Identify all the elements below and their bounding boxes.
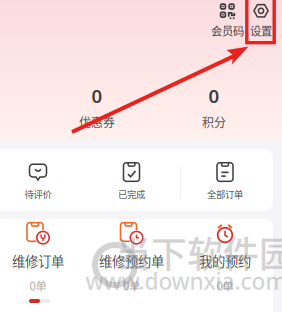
staticText: 0 bbox=[208, 83, 219, 108]
staticText: 维修预约单 bbox=[99, 251, 164, 270]
button[interactable]: 我的预约 bbox=[181, 229, 269, 287]
button[interactable]: 全部订单 bbox=[181, 160, 269, 204]
button[interactable]: 0 bbox=[62, 91, 132, 123]
staticText: 0单 bbox=[123, 277, 140, 294]
staticText: 全部订单 bbox=[207, 187, 243, 201]
staticText: 维修订单 bbox=[12, 251, 64, 270]
button[interactable]: 维修预约单 bbox=[87, 229, 175, 287]
staticText: 会员码 bbox=[211, 22, 244, 39]
staticText: 积分 bbox=[202, 113, 226, 131]
staticText: www.downxia.com bbox=[85, 266, 282, 296]
button[interactable]: 设置 bbox=[240, 6, 282, 36]
staticText: 我的预约 bbox=[199, 251, 251, 270]
staticText: 当下软件园 bbox=[115, 226, 282, 278]
staticText: 待评价 bbox=[24, 187, 51, 201]
staticText: 优惠券 bbox=[79, 113, 115, 131]
staticText: 0 bbox=[91, 83, 102, 108]
button[interactable]: 0 bbox=[179, 91, 249, 123]
button[interactable]: 会员码 bbox=[206, 6, 248, 36]
button[interactable]: 已完成 bbox=[87, 160, 175, 204]
staticText: 设置 bbox=[250, 22, 272, 39]
staticText: 0单 bbox=[29, 277, 46, 294]
button[interactable]: 待评价 bbox=[0, 160, 82, 204]
staticText: 0单 bbox=[216, 277, 233, 294]
staticText: 已完成 bbox=[118, 187, 145, 201]
button[interactable]: 维修订单 bbox=[0, 229, 82, 287]
